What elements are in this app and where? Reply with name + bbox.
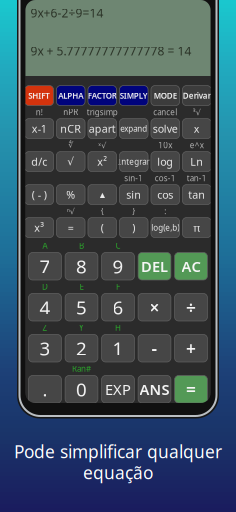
button[interactable]: SHIFT [25, 86, 54, 106]
button[interactable]: ) [119, 218, 148, 238]
staticText: π [193, 220, 200, 235]
button[interactable]: 6 [102, 293, 134, 321]
button[interactable]: - [138, 334, 171, 362]
staticText: - [151, 337, 157, 360]
button[interactable]: 8 [65, 252, 98, 280]
staticText: ( [101, 220, 104, 235]
button[interactable]: √ [56, 152, 85, 172]
staticText: A [42, 240, 47, 251]
button[interactable]: × [138, 293, 171, 321]
staticText: ∜ [68, 141, 73, 150]
staticText: cos-1 [155, 173, 176, 183]
button[interactable]: ▴ [88, 185, 117, 205]
staticText: 9x + 5.77777777777778 = 14 [30, 43, 191, 59]
button[interactable]: sin [119, 185, 148, 205]
staticText: 4 [39, 295, 50, 320]
button[interactable]: cos [151, 185, 179, 205]
staticText: { [101, 206, 104, 216]
staticText: 2 [76, 336, 87, 361]
button[interactable]: ALPHA [56, 86, 85, 106]
button[interactable]: tan [182, 185, 211, 205]
staticText: 8 [76, 254, 87, 279]
button[interactable]: MODE [151, 86, 179, 106]
button[interactable]: d/c [25, 152, 54, 172]
staticText: Z [42, 322, 47, 333]
button[interactable]: Ln [182, 152, 211, 172]
staticText: ALPHA [58, 90, 83, 101]
staticText: 7 [39, 254, 50, 279]
staticText: = [186, 378, 196, 401]
staticText: ANS [139, 379, 169, 399]
staticText: d/c [31, 154, 47, 169]
staticText: MODE [154, 90, 177, 101]
staticText: } [132, 206, 135, 216]
button[interactable]: log(e,b) [151, 218, 179, 238]
staticText: FACTOR [88, 90, 117, 101]
button[interactable]: x-1 [25, 119, 54, 139]
staticText: C [115, 240, 120, 251]
button[interactable]: ( - ) [25, 185, 54, 205]
button[interactable]: apart [88, 119, 117, 139]
staticText: . [42, 377, 47, 402]
button[interactable]: 5 [65, 293, 98, 321]
staticText: sin [126, 187, 141, 202]
button[interactable]: solve [151, 119, 179, 139]
button[interactable]: log [151, 152, 179, 172]
button[interactable]: ANS [138, 375, 171, 403]
button[interactable]: + [175, 334, 207, 362]
staticText: DEL [141, 256, 168, 276]
staticText: ) [132, 220, 135, 235]
button[interactable]: SIMPLY [119, 86, 148, 106]
button[interactable]: ( [88, 218, 117, 238]
staticText: solve [153, 121, 178, 136]
button[interactable]: π [182, 218, 211, 238]
staticText: AC [181, 256, 200, 276]
button[interactable]: % [56, 185, 85, 205]
staticText: Pode simplificar qualquer [14, 440, 222, 463]
button[interactable]: EXP [102, 375, 134, 403]
button[interactable]: AC [175, 252, 207, 280]
staticText: tan-1 [187, 173, 207, 183]
staticText: x [194, 121, 200, 136]
staticText: 6 [112, 295, 123, 320]
button[interactable]: . [29, 375, 61, 403]
button[interactable]: ÷ [175, 293, 207, 321]
button[interactable]: Derivar [182, 86, 211, 106]
staticText: + [186, 337, 196, 360]
button[interactable]: 2 [65, 334, 98, 362]
button[interactable]: expand [119, 119, 148, 139]
staticText: expand [120, 123, 147, 134]
button[interactable]: FACTOR [88, 86, 117, 106]
staticText: Y [79, 322, 84, 333]
staticText: E [79, 281, 83, 292]
button[interactable]: Integrar [119, 152, 148, 172]
button[interactable]: x³ [25, 218, 54, 238]
staticText: ˣ√ [98, 140, 106, 150]
button[interactable]: 3 [29, 334, 61, 362]
staticText: 9 [112, 254, 123, 279]
button[interactable]: DEL [138, 252, 171, 280]
button[interactable]: x² [88, 152, 117, 172]
staticText: Ln [190, 154, 203, 169]
staticText: nCR [60, 121, 81, 136]
button[interactable]: 4 [29, 293, 61, 321]
staticText: sin-1 [124, 173, 143, 183]
button[interactable]: = [175, 375, 207, 403]
button[interactable]: 0 [65, 375, 98, 403]
staticText: x² [97, 154, 107, 169]
button[interactable]: x [182, 119, 211, 139]
staticText: Derivar [183, 90, 211, 101]
button[interactable]: = [56, 218, 85, 238]
staticText: log(e,b) [151, 222, 179, 233]
button[interactable]: nCR [56, 119, 85, 139]
staticText: equação [83, 461, 153, 484]
staticText: 3 [39, 336, 50, 361]
staticText: apart [89, 121, 116, 136]
staticText: 1 [112, 336, 123, 361]
staticText: % [66, 187, 75, 202]
staticText: 10x [158, 140, 172, 150]
button[interactable]: 1 [102, 334, 134, 362]
staticText: D [42, 281, 48, 292]
button[interactable]: 9 [102, 252, 134, 280]
button[interactable]: 7 [29, 252, 61, 280]
